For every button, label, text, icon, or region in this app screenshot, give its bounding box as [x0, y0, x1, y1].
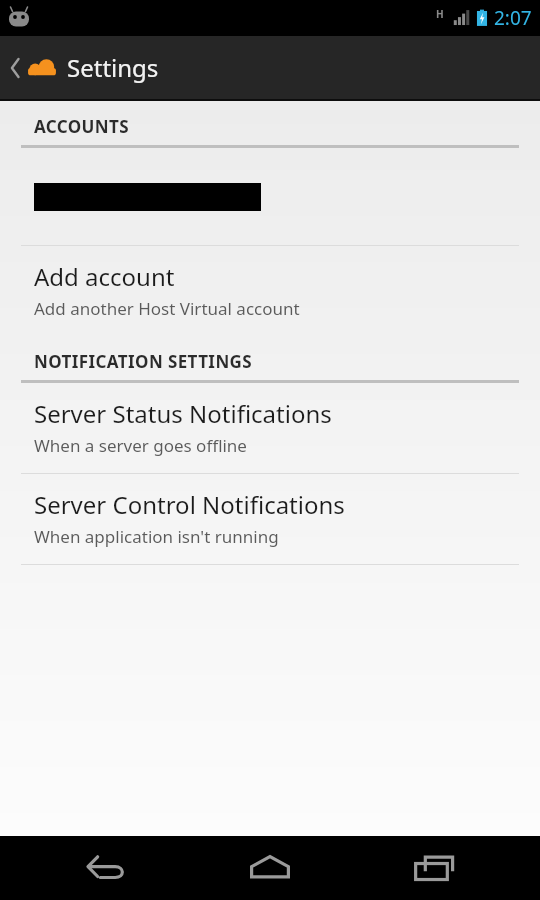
staticText: H — [436, 7, 444, 21]
staticText: Server Status Notifications — [34, 397, 332, 430]
staticText: NOTIFICATION SETTINGS — [34, 350, 253, 373]
button[interactable]: Add account — [0, 246, 540, 336]
button[interactable]: Recent apps — [375, 836, 495, 900]
button[interactable]: Back — [45, 836, 165, 900]
staticText: When application isn't running — [34, 525, 279, 548]
staticText: Add another Host Virtual account — [34, 297, 300, 320]
button[interactable]: Server Control Notifications — [0, 474, 540, 564]
button[interactable]: Settings — [0, 36, 171, 99]
staticText: Settings — [67, 51, 159, 84]
staticText: Server Control Notifications — [34, 488, 345, 521]
staticText: When a server goes offline — [34, 434, 247, 457]
button[interactable]: Home — [210, 836, 330, 900]
button[interactable]: Server Status Notifications — [0, 383, 540, 473]
staticText: ACCOUNTS — [34, 115, 130, 138]
button[interactable] — [0, 148, 540, 245]
staticText: Add account — [34, 260, 175, 293]
staticText: 2:07 — [494, 5, 532, 31]
